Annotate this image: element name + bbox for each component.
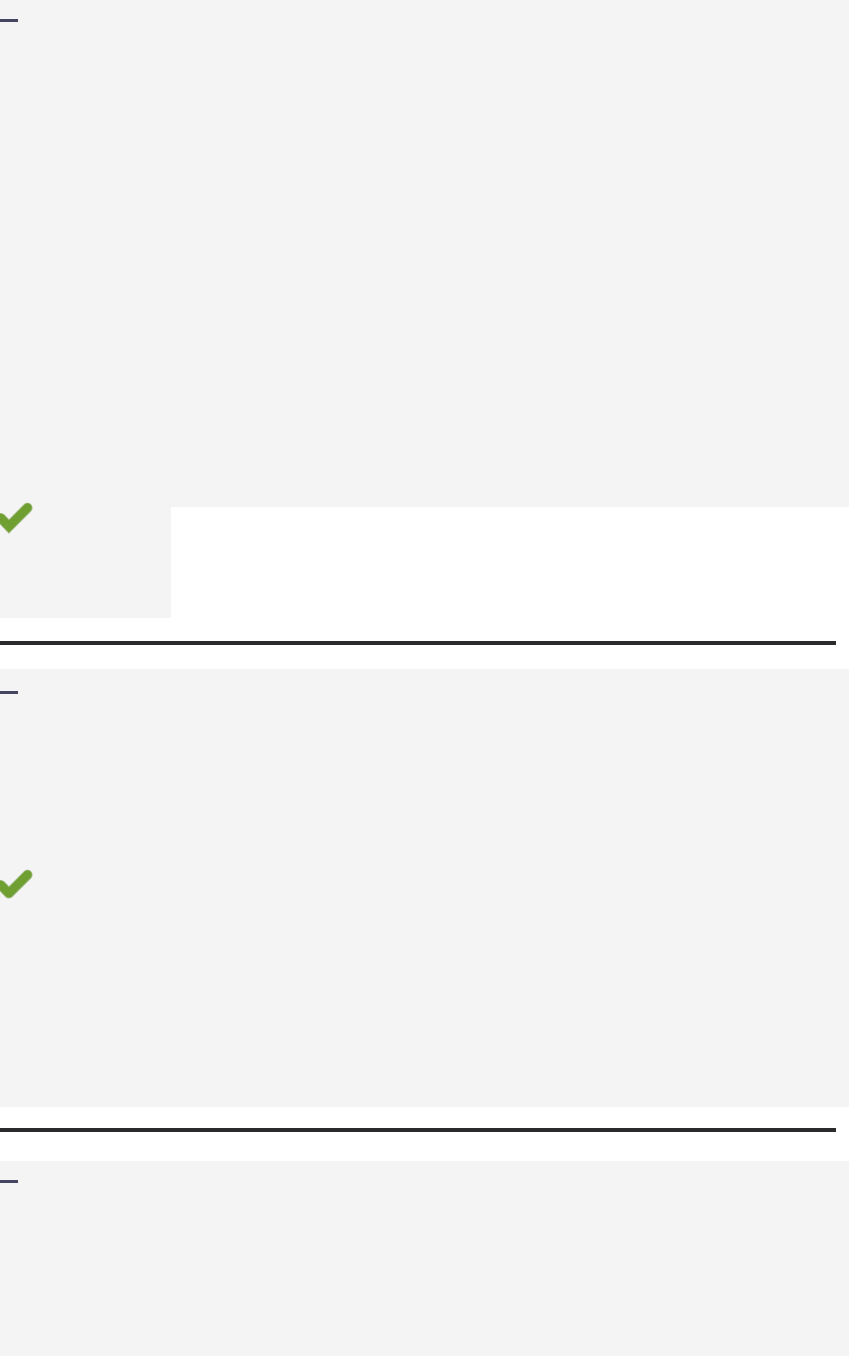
button[interactable]: Completed: [0, 669, 849, 1107]
button[interactable]: Completed: [0, 507, 171, 618]
button[interactable]: [0, 1161, 849, 1356]
other: Completed: [0, 870, 29, 900]
